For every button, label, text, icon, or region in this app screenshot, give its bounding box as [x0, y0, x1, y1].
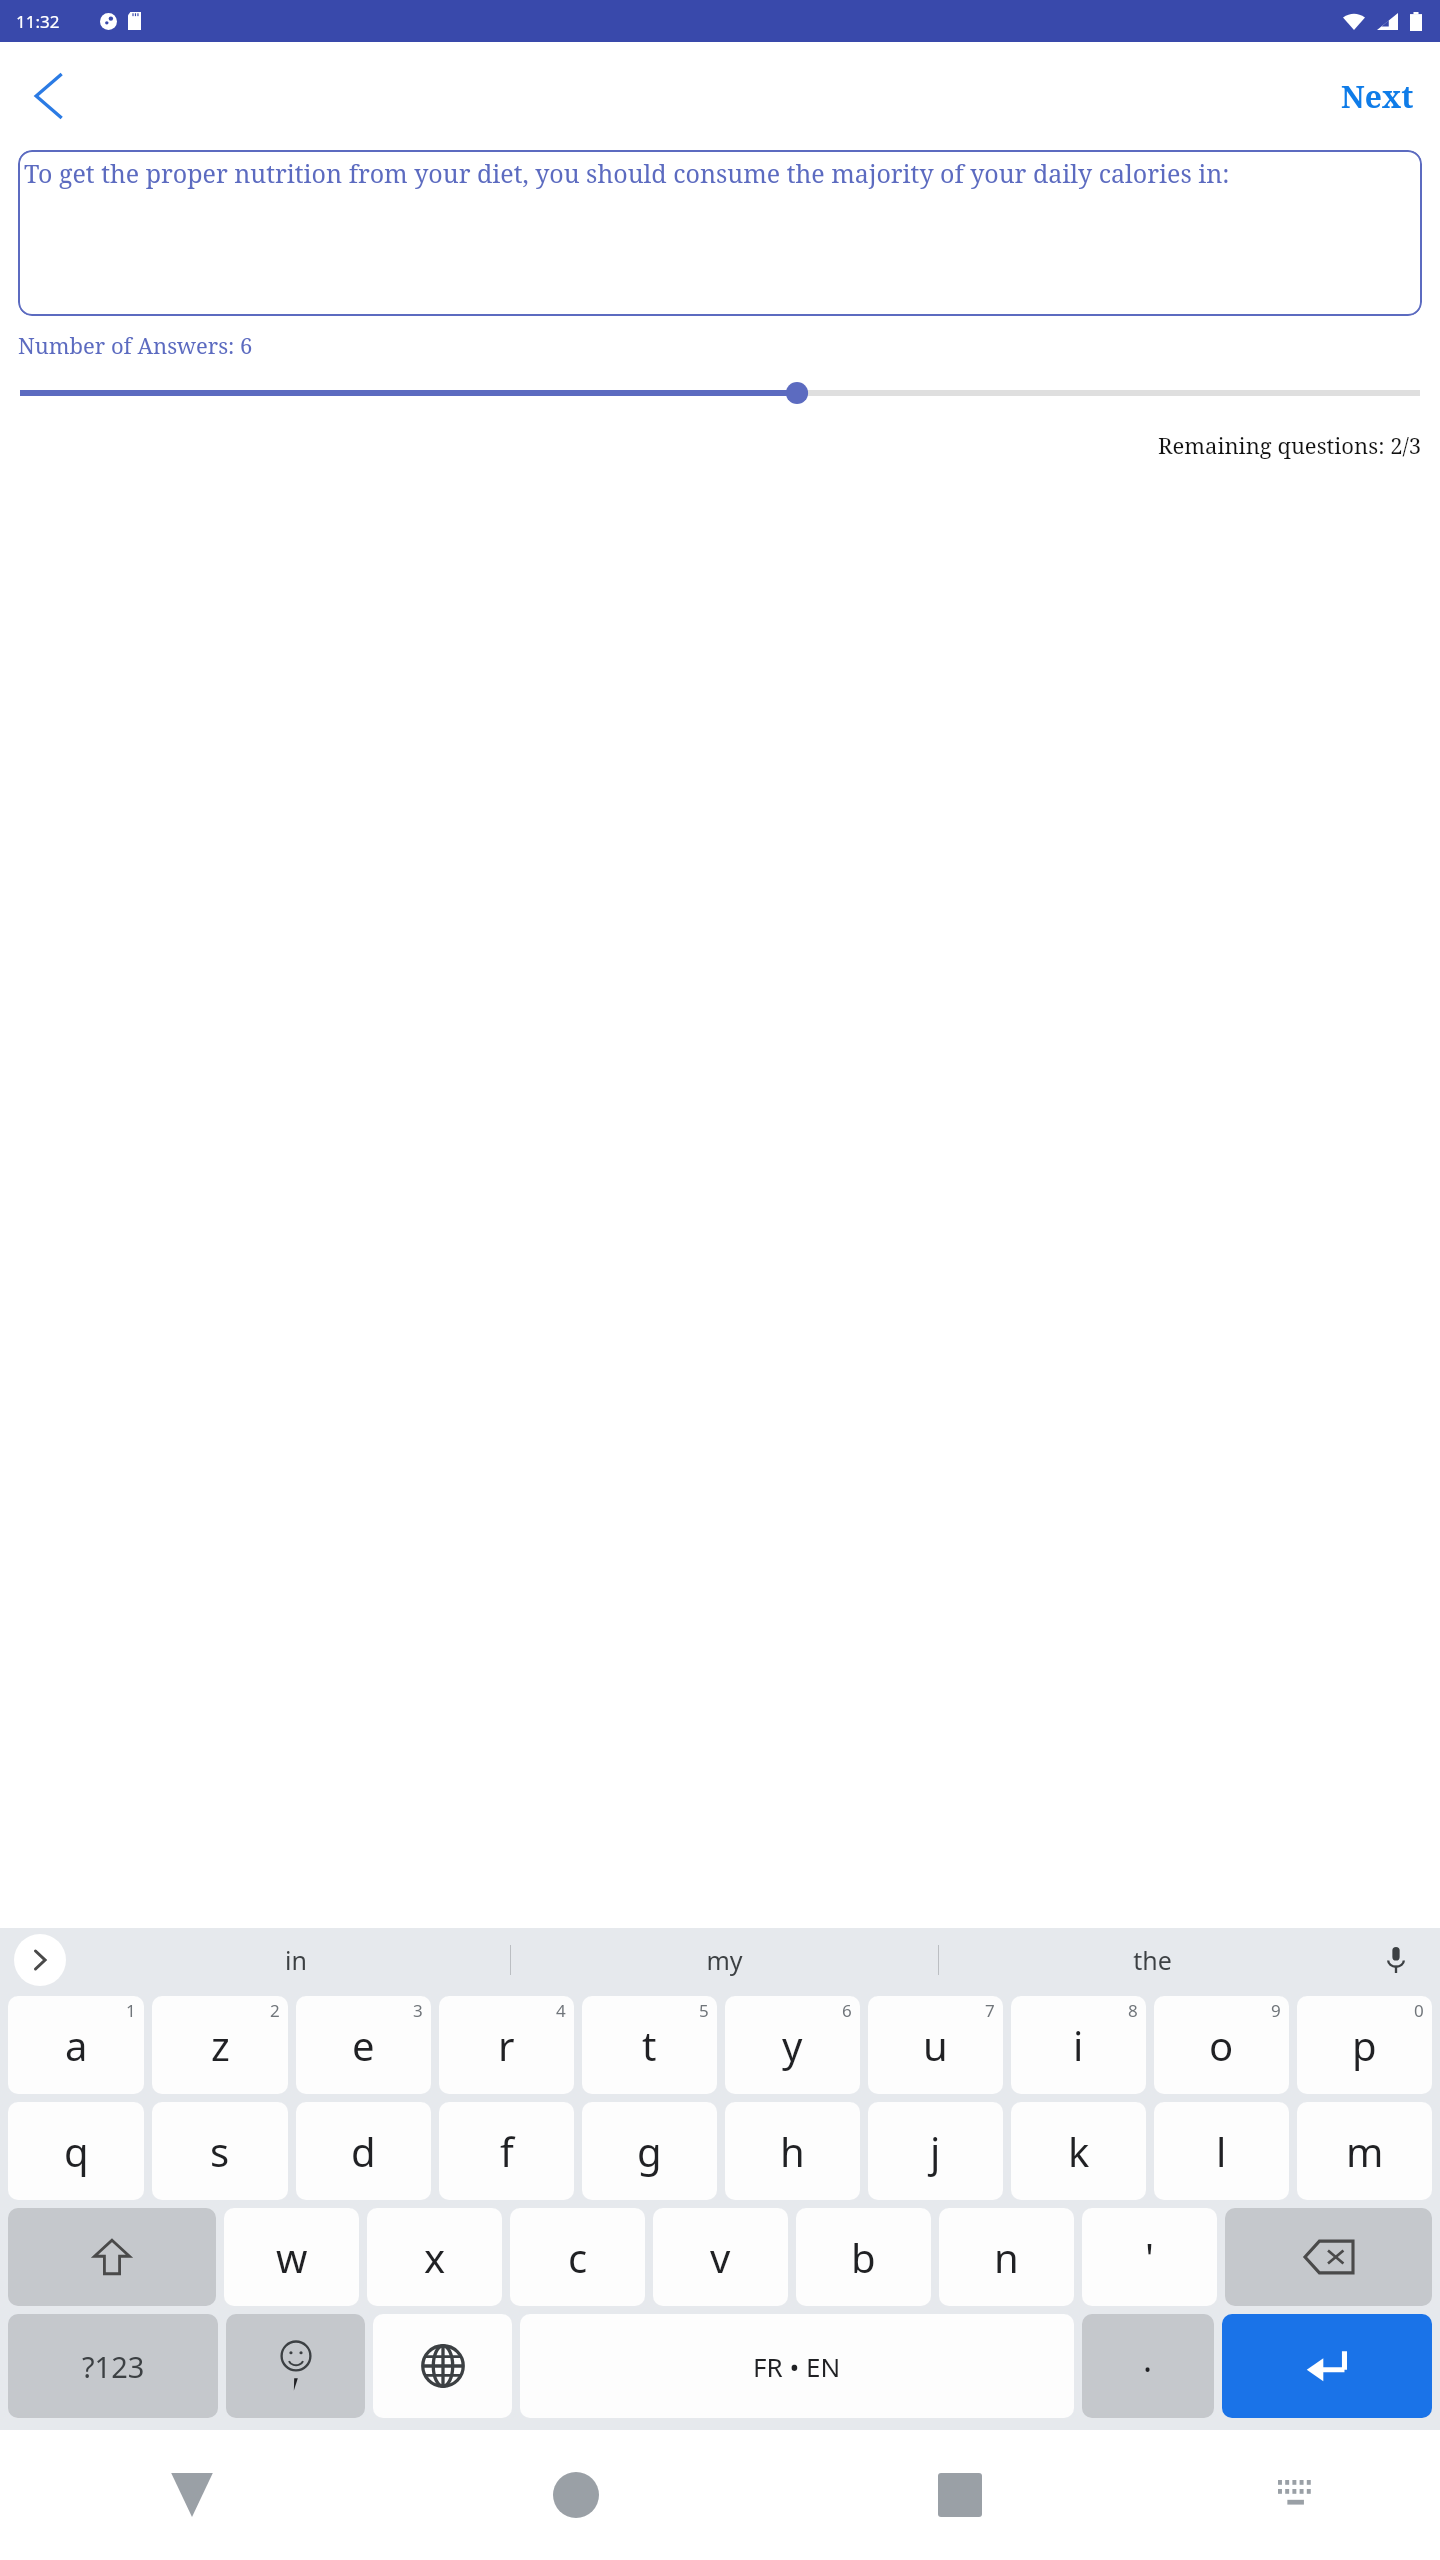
button[interactable]: More suggestions: [14, 1934, 66, 1986]
staticText: j: [930, 2124, 941, 2178]
button[interactable]: a: [8, 1996, 144, 2094]
staticText: .: [1143, 2336, 1153, 2382]
button[interactable]: j: [868, 2102, 1003, 2200]
button[interactable]: To get the proper nutrition from your di…: [18, 150, 1422, 316]
button[interactable]: Switch keyboard: [1152, 2430, 1440, 2560]
button[interactable]: d: [296, 2102, 431, 2200]
staticText: e: [352, 2018, 375, 2072]
button[interactable]: the: [939, 1928, 1366, 1992]
button[interactable]: k: [1011, 2102, 1146, 2200]
staticText: u: [923, 2018, 948, 2072]
button[interactable]: u: [868, 1996, 1003, 2094]
button[interactable]: w: [224, 2208, 359, 2306]
button[interactable]: e: [296, 1996, 431, 2094]
staticText: x: [424, 2230, 446, 2284]
button[interactable]: Shift: [8, 2208, 216, 2306]
staticText: z: [211, 2018, 230, 2072]
button[interactable]: Back: [20, 64, 84, 128]
button[interactable]: c: [510, 2208, 645, 2306]
button[interactable]: x: [367, 2208, 502, 2306]
button[interactable]: l: [1154, 2102, 1289, 2200]
button[interactable]: b: [796, 2208, 931, 2306]
button[interactable]: Home: [384, 2430, 768, 2560]
button[interactable]: t: [582, 1996, 717, 2094]
button[interactable]: Enter: [1222, 2314, 1432, 2418]
button[interactable]: q: [8, 2102, 144, 2200]
staticText: Number of Answers: 6: [18, 330, 253, 360]
button[interactable]: [20, 378, 1420, 408]
button[interactable]: m: [1297, 2102, 1432, 2200]
button[interactable]: o: [1154, 1996, 1289, 2094]
staticText: t: [642, 2018, 657, 2072]
staticText: my: [706, 1943, 743, 1977]
staticText: d: [351, 2124, 376, 2178]
staticText: q: [64, 2124, 89, 2178]
staticText: c: [568, 2230, 588, 2284]
button[interactable]: p: [1297, 1996, 1432, 2094]
button[interactable]: s: [152, 2102, 288, 2200]
button[interactable]: f: [439, 2102, 574, 2200]
button[interactable]: .: [1082, 2314, 1214, 2418]
button[interactable]: r: [439, 1996, 574, 2094]
staticText: w: [276, 2230, 308, 2284]
staticText: r: [498, 2018, 515, 2072]
staticText: i: [1073, 2018, 1084, 2072]
staticText: o: [1209, 2018, 1234, 2072]
staticText: Remaining questions: 2/3: [1158, 430, 1422, 460]
button[interactable]: g: [582, 2102, 717, 2200]
button[interactable]: Change language: [373, 2314, 512, 2418]
staticText: Next: [1341, 76, 1414, 117]
staticText: 5: [699, 1999, 709, 2022]
staticText: 3: [413, 1999, 423, 2022]
button[interactable]: Hide keyboard: [0, 2430, 384, 2560]
button[interactable]: y: [725, 1996, 860, 2094]
staticText: a: [65, 2018, 88, 2072]
staticText: 0: [1414, 1999, 1424, 2022]
staticText: in: [285, 1943, 307, 1977]
staticText: 11:32: [16, 10, 60, 33]
staticText: To get the proper nutrition from your di…: [24, 156, 1230, 190]
staticText: s: [210, 2124, 230, 2178]
staticText: m: [1346, 2124, 1384, 2178]
button[interactable]: in: [82, 1928, 510, 1992]
staticText: l: [1216, 2124, 1227, 2178]
staticText: n: [994, 2230, 1019, 2284]
button[interactable]: n: [939, 2208, 1074, 2306]
staticText: h: [780, 2124, 805, 2178]
staticText: FR • EN: [753, 2349, 841, 2384]
staticText: 2: [270, 1999, 280, 2022]
staticText: 7: [985, 1999, 995, 2022]
staticText: v: [710, 2230, 731, 2284]
staticText: ': [1145, 2230, 1154, 2284]
button[interactable]: Next: [1327, 66, 1428, 127]
staticText: 6: [842, 1999, 852, 2022]
button[interactable]: ?123: [8, 2314, 218, 2418]
staticText: 1: [126, 1999, 136, 2022]
button[interactable]: z: [152, 1996, 288, 2094]
staticText: p: [1352, 2018, 1377, 2072]
button[interactable]: v: [653, 2208, 788, 2306]
button[interactable]: FR • EN: [520, 2314, 1074, 2418]
button[interactable]: Voice input: [1374, 1938, 1418, 1982]
staticText: k: [1068, 2124, 1090, 2178]
button[interactable]: Emoji: [226, 2314, 365, 2418]
staticText: b: [851, 2230, 876, 2284]
staticText: 9: [1271, 1999, 1281, 2022]
staticText: y: [782, 2018, 803, 2072]
staticText: 8: [1128, 1999, 1138, 2022]
button[interactable]: Recents: [768, 2430, 1152, 2560]
button[interactable]: my: [511, 1928, 938, 1992]
staticText: ?123: [82, 2347, 145, 2386]
button[interactable]: ': [1082, 2208, 1217, 2306]
staticText: 4: [556, 1999, 566, 2022]
staticText: f: [500, 2124, 514, 2178]
staticText: g: [637, 2124, 662, 2178]
button[interactable]: i: [1011, 1996, 1146, 2094]
button[interactable]: Backspace: [1225, 2208, 1432, 2306]
staticText: the: [1133, 1943, 1172, 1977]
button[interactable]: h: [725, 2102, 860, 2200]
